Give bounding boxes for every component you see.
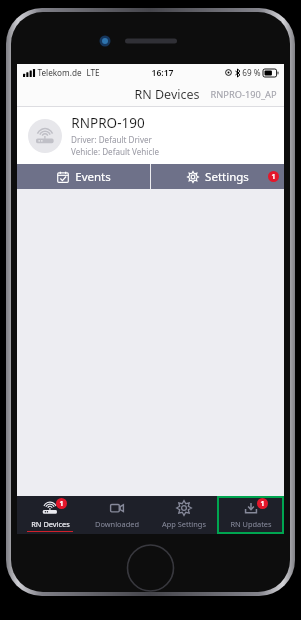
staticText: Events (75, 169, 111, 185)
staticText: 1 (260, 499, 265, 509)
staticText: 69 % (242, 67, 261, 78)
staticText: LTE (86, 67, 100, 78)
staticText: 1 (59, 499, 64, 509)
staticText: Driver: Default Driver (71, 134, 152, 145)
staticText: Vehicle: Default Vehicle (71, 146, 159, 157)
button[interactable]: RN Devices (17, 496, 83, 534)
button[interactable]: Settings (151, 164, 284, 189)
button[interactable]: Events (17, 164, 150, 189)
staticText: Downloaded (95, 519, 139, 529)
staticText: RN Devices (31, 519, 70, 529)
button[interactable]: Downloaded (83, 496, 150, 534)
staticText: RN Updates (230, 519, 272, 529)
button[interactable]: App Settings (150, 496, 217, 534)
staticText: RN Devices (134, 86, 200, 103)
staticText: RNPRO-190_AP (210, 88, 277, 101)
staticText: Telekom.de (37, 67, 82, 78)
button[interactable]: RN Updates (217, 496, 284, 534)
staticText: App Settings (162, 519, 206, 529)
staticText: Settings (205, 169, 249, 185)
staticText: 1 (271, 172, 276, 182)
staticText: 16:17 (151, 67, 174, 79)
button[interactable]: RNPRO-190 (17, 107, 284, 164)
staticText: RNPRO-190 (71, 114, 145, 132)
